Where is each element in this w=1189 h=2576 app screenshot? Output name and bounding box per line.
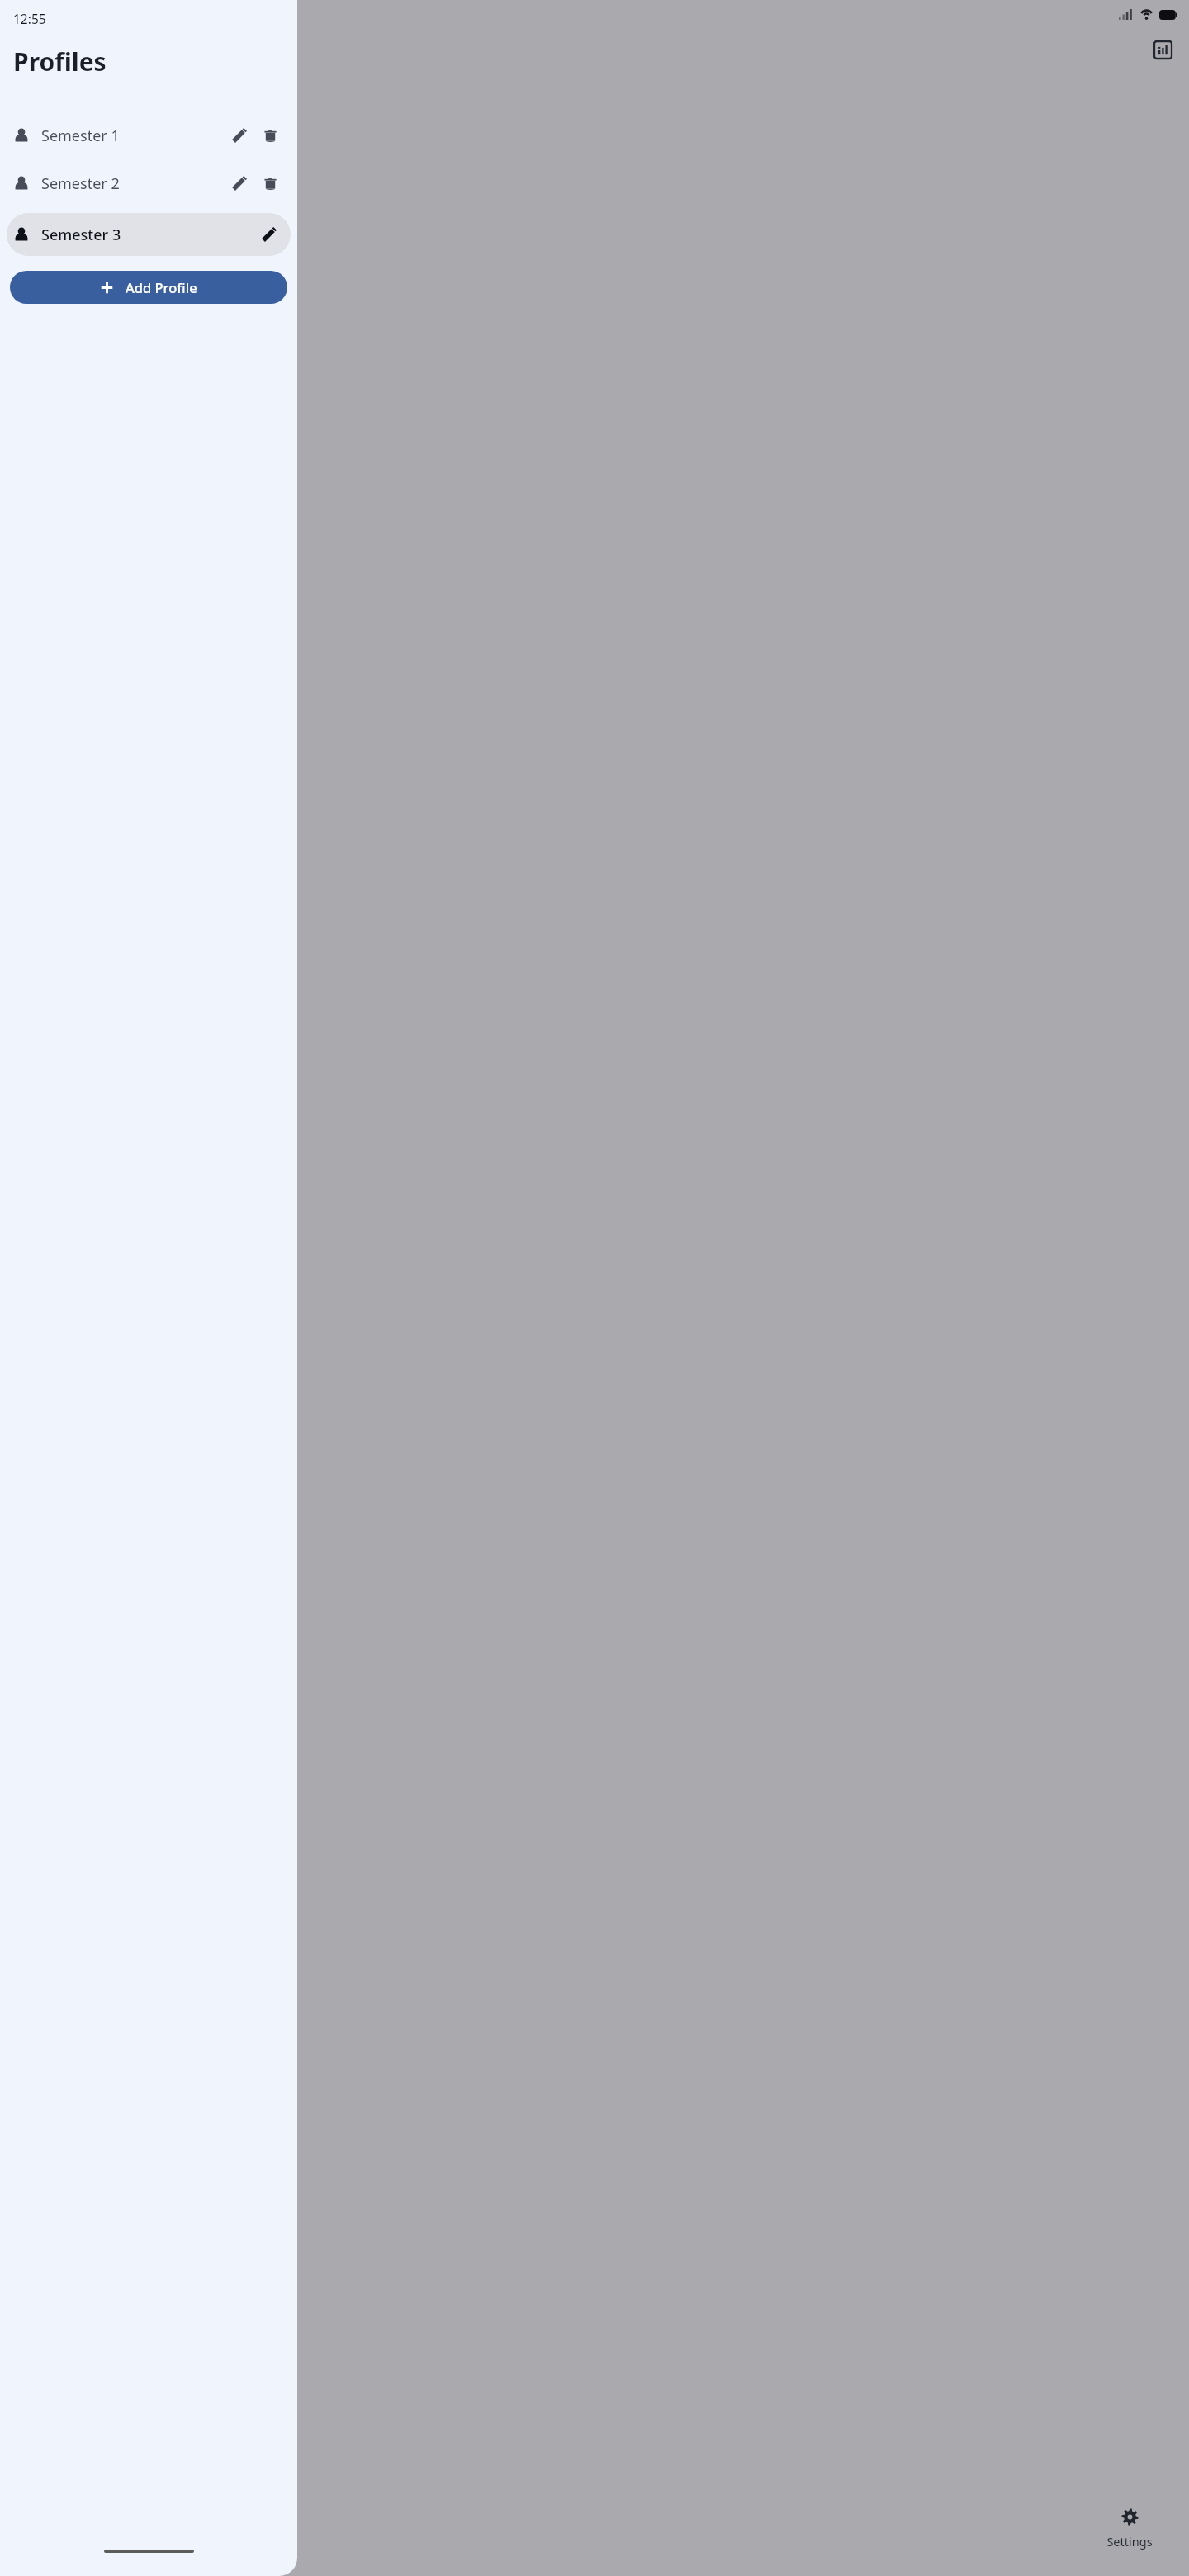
button[interactable]: Statistics xyxy=(1146,33,1179,66)
staticText: Add Profile xyxy=(126,278,197,296)
button[interactable]: Mark xyxy=(183,275,249,296)
button[interactable]: Settings xyxy=(1077,2507,1182,2550)
button[interactable]: Delete Semester 1 xyxy=(256,121,284,149)
staticText: Mark xyxy=(194,278,225,294)
button[interactable]: Edit Semester 3 xyxy=(254,220,282,249)
button[interactable]: Edit Semester 1 xyxy=(225,121,253,149)
button[interactable]: Add Profile xyxy=(10,271,287,304)
staticText: Semester 3 xyxy=(41,225,121,245)
button[interactable]: Semester 3 xyxy=(7,213,291,256)
staticText: Semester 2 xyxy=(41,173,120,194)
staticText: Settings xyxy=(1106,2533,1153,2550)
button[interactable]: Semester 2 xyxy=(7,165,291,201)
staticText: Profiles xyxy=(13,45,107,78)
staticText: Semester 1 xyxy=(41,125,120,146)
button[interactable]: Semester 1 xyxy=(7,117,291,154)
button[interactable]: 6 xyxy=(153,111,258,195)
button[interactable]: Delete Semester 2 xyxy=(256,169,284,197)
staticText: 12:55 xyxy=(13,10,46,27)
button[interactable]: Edit Semester 2 xyxy=(225,169,253,197)
